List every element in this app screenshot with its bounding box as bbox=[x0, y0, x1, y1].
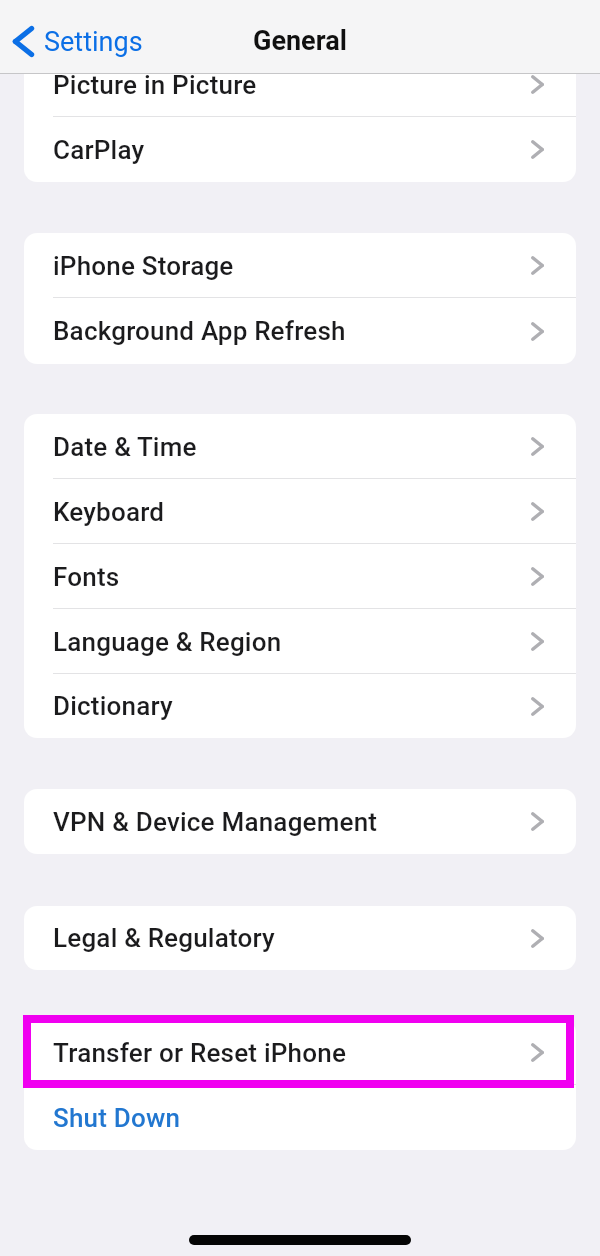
staticText: Settings bbox=[44, 26, 143, 58]
button[interactable]: CarPlay bbox=[24, 117, 576, 182]
button[interactable]: Language & Region bbox=[24, 609, 576, 674]
staticText: Fonts bbox=[53, 562, 120, 592]
staticText: Date & Time bbox=[53, 432, 197, 462]
staticText: Background App Refresh bbox=[53, 316, 346, 346]
button[interactable]: Transfer or Reset iPhone bbox=[24, 1020, 576, 1085]
staticText: iPhone Storage bbox=[53, 251, 234, 281]
staticText: Shut Down bbox=[53, 1103, 181, 1133]
button[interactable]: Fonts bbox=[24, 544, 576, 609]
button[interactable]: Back bbox=[12, 25, 143, 58]
staticText: CarPlay bbox=[53, 135, 145, 165]
button[interactable]: Keyboard bbox=[24, 479, 576, 544]
staticText: Language & Region bbox=[53, 627, 282, 657]
button[interactable]: Shut Down bbox=[24, 1085, 576, 1150]
other: Back bbox=[12, 25, 35, 58]
button[interactable]: Legal & Regulatory bbox=[24, 906, 576, 970]
staticText: VPN & Device Management bbox=[53, 807, 378, 837]
button[interactable]: Background App Refresh bbox=[24, 298, 576, 364]
button[interactable]: Date & Time bbox=[24, 414, 576, 479]
button[interactable]: VPN & Device Management bbox=[24, 789, 576, 854]
staticText: Picture in Picture bbox=[53, 74, 257, 100]
button[interactable]: Picture in Picture bbox=[24, 74, 576, 117]
staticText: Transfer or Reset iPhone bbox=[53, 1038, 347, 1068]
staticText: General bbox=[253, 25, 347, 57]
staticText: Legal & Regulatory bbox=[53, 923, 275, 953]
button[interactable]: iPhone Storage bbox=[24, 233, 576, 298]
button[interactable]: Dictionary bbox=[24, 674, 576, 738]
staticText: Keyboard bbox=[53, 497, 165, 527]
staticText: Dictionary bbox=[53, 691, 173, 721]
